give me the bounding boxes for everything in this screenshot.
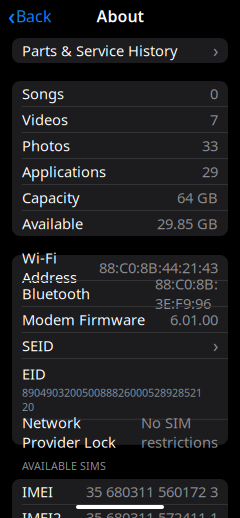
- staticText: Photos: [22, 136, 70, 155]
- staticText: ‹: [8, 1, 15, 31]
- button[interactable]: SEID: [12, 333, 228, 358]
- staticText: 6.01.00: [170, 310, 218, 329]
- staticText: Wi-Fi Address: [22, 248, 77, 287]
- staticText: 33: [202, 136, 218, 155]
- staticText: 64 GB: [177, 188, 218, 207]
- staticText: ›: [213, 334, 218, 357]
- staticText: EID: [22, 364, 46, 383]
- staticText: Back: [16, 5, 52, 27]
- staticText: IMEI2: [22, 508, 61, 518]
- staticText: Parts & Service History: [22, 41, 177, 60]
- button[interactable]: Bluetooth: [12, 281, 228, 306]
- staticText: ›: [213, 39, 218, 62]
- staticText: Bluetooth: [22, 284, 90, 303]
- staticText: 0: [210, 84, 218, 103]
- staticText: 88:C0:8B:44:21:43: [99, 258, 218, 277]
- staticText: Songs: [22, 84, 64, 103]
- button[interactable]: Parts & Service History: [12, 38, 228, 63]
- staticText: 89049032005008882600052892852120: [22, 385, 202, 414]
- staticText: 29: [202, 162, 218, 181]
- button[interactable]: Wi-Fi Address: [12, 255, 228, 280]
- button[interactable]: Available: [12, 211, 228, 236]
- button[interactable]: Applications: [12, 159, 228, 184]
- staticText: AVAILABLE SIMS: [22, 459, 106, 473]
- button[interactable]: Modem Firmware: [12, 307, 228, 332]
- button[interactable]: Songs: [12, 81, 228, 106]
- button[interactable]: Network Provider Lock: [12, 420, 228, 445]
- staticText: 35 680311 560172 3: [86, 482, 218, 501]
- staticText: SEID: [22, 336, 54, 355]
- button[interactable]: ‹: [0, 4, 60, 28]
- staticText: Videos: [22, 110, 68, 129]
- button[interactable]: IMEI: [12, 479, 228, 504]
- button[interactable]: EID: [12, 359, 228, 419]
- staticText: Capacity: [22, 188, 79, 207]
- button[interactable]: IMEI2: [12, 505, 228, 518]
- staticText: 7: [210, 110, 218, 129]
- staticText: Applications: [22, 162, 106, 181]
- button[interactable]: Photos: [12, 133, 228, 158]
- staticText: IMEI: [22, 482, 53, 501]
- staticText: 29.85 GB: [157, 214, 218, 233]
- staticText: Network Provider Lock: [22, 413, 116, 452]
- staticText: No SIM restrictions: [141, 413, 218, 452]
- staticText: 35 680311 572411 1: [86, 508, 218, 518]
- button[interactable]: Capacity: [12, 185, 228, 210]
- button[interactable]: Videos: [12, 107, 228, 132]
- staticText: 88:C0:8B:3E:F9:96: [155, 274, 218, 313]
- staticText: Available: [22, 214, 83, 233]
- staticText: Modem Firmware: [22, 310, 145, 329]
- staticText: About: [96, 5, 143, 27]
